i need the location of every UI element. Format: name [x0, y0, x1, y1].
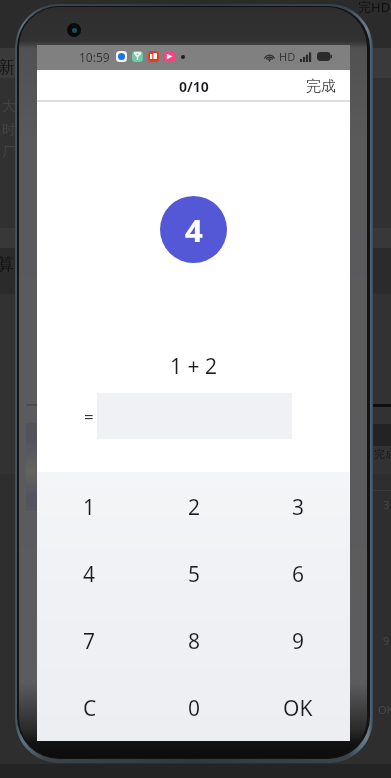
staticText: 9 [292, 627, 305, 656]
staticText: 7 [83, 627, 96, 656]
staticText: 9 [383, 633, 390, 648]
button[interactable]: 7 [37, 608, 142, 675]
button[interactable]: 5 [142, 541, 246, 608]
staticText: 新版 [0, 57, 32, 78]
staticText: 4 [83, 560, 96, 589]
button[interactable]: OK [246, 675, 350, 742]
staticText: 1 + 2 [170, 352, 217, 380]
staticText: OK [283, 694, 313, 723]
staticText: 4 [185, 209, 203, 251]
button[interactable]: 1 [37, 473, 142, 541]
staticText: = [84, 405, 94, 428]
button[interactable]: 6 [246, 541, 350, 608]
staticText: 10:59 [79, 49, 110, 65]
staticText: 2 [188, 493, 201, 522]
staticText: 0/10 [179, 77, 209, 96]
staticText: 完HD [358, 0, 391, 16]
staticText: 5 [188, 560, 201, 589]
staticText: 时间 [2, 121, 30, 139]
staticText: C [83, 694, 97, 723]
staticText: 6 [292, 560, 305, 589]
staticText: 3 [383, 497, 390, 512]
staticText: 8 [188, 627, 201, 656]
button[interactable]: 8 [142, 608, 246, 675]
staticText: 厂商 [2, 144, 30, 162]
staticText: 算大 [0, 254, 31, 275]
staticText: HD [279, 49, 296, 64]
staticText: 1 [83, 493, 96, 522]
button[interactable]: 9 [246, 608, 350, 675]
button[interactable]: 完成 [290, 71, 350, 102]
staticText: 3 [292, 493, 305, 522]
staticText: 0 [188, 694, 201, 723]
button[interactable]: 4 [37, 541, 142, 608]
button[interactable]: 0 [142, 675, 246, 742]
button[interactable]: 3 [246, 473, 350, 541]
staticText: 完成 [374, 447, 391, 461]
staticText: OK [378, 702, 391, 717]
button[interactable]: 2 [142, 473, 246, 541]
staticText: 完成 [306, 77, 336, 96]
staticText: 大小 [2, 98, 30, 116]
button[interactable]: C [37, 675, 142, 742]
